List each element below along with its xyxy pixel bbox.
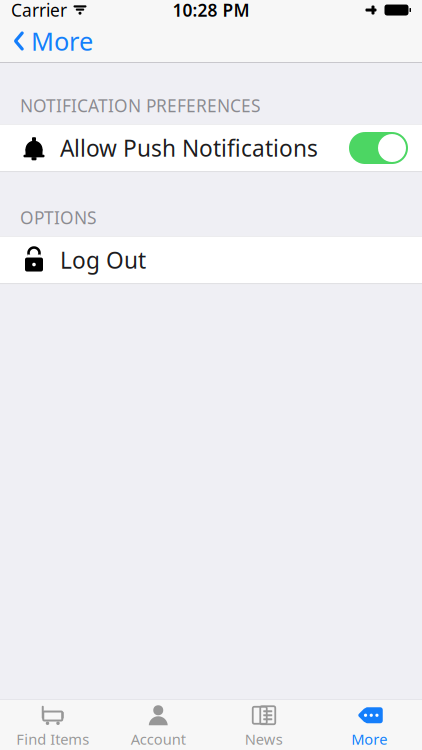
staticText: Carrier bbox=[11, 0, 67, 21]
button[interactable]: News bbox=[211, 700, 316, 750]
staticText: 10:28 PM bbox=[172, 0, 249, 21]
staticText: Account bbox=[131, 729, 186, 749]
button[interactable]: More bbox=[0, 19, 103, 62]
staticText: More bbox=[31, 24, 93, 58]
staticText: NOTIFICATION PREFERENCES bbox=[20, 94, 261, 117]
button[interactable]: Find Items bbox=[0, 700, 105, 750]
button[interactable]: Log Out bbox=[0, 236, 422, 284]
staticText: OPTIONS bbox=[20, 206, 97, 229]
staticText: Find Items bbox=[16, 729, 89, 749]
staticText: Allow Push Notifications bbox=[60, 133, 318, 163]
staticText: Log Out bbox=[60, 245, 146, 275]
button[interactable]: Allow Push Notifications bbox=[349, 132, 408, 164]
button[interactable]: More bbox=[316, 700, 422, 750]
staticText: More bbox=[351, 729, 387, 749]
staticText: News bbox=[245, 729, 283, 749]
button[interactable]: Account bbox=[105, 700, 211, 750]
